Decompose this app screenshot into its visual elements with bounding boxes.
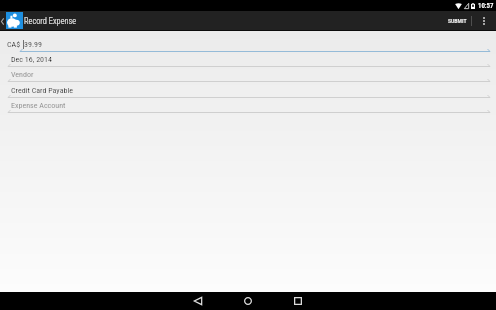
button[interactable]: Back: [173, 292, 223, 310]
staticText: Vendor: [11, 70, 34, 79]
button[interactable]: More options: [472, 11, 496, 31]
staticText: SUBMIT: [448, 18, 467, 25]
staticText: Dec 16, 2014: [11, 55, 52, 64]
staticText: 39.99: [24, 40, 42, 49]
staticText: Record Expense: [24, 16, 77, 26]
button[interactable]: Navigate up: [0, 11, 23, 31]
button[interactable]: Dec 16, 2014: [0, 52, 496, 67]
button[interactable]: CA$: [0, 31, 496, 52]
button[interactable]: Vendor: [0, 67, 496, 82]
staticText: 10:57: [478, 2, 494, 10]
button[interactable]: Home: [223, 292, 273, 310]
staticText: Expense Account: [11, 101, 66, 110]
staticText: CA$: [7, 40, 21, 49]
button[interactable]: SUBMIT: [444, 11, 471, 31]
button[interactable]: Credit Card Payable: [0, 82, 496, 98]
button[interactable]: Recent apps: [273, 292, 323, 310]
staticText: Credit Card Payable: [11, 86, 73, 95]
button[interactable]: Expense Account: [0, 98, 496, 113]
